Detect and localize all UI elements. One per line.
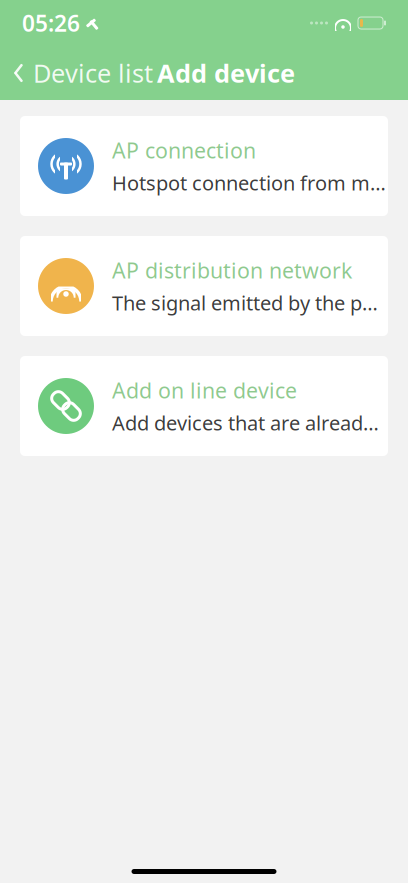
staticText: Add devices that are already networked <box>112 409 388 436</box>
staticText: Hotspot connection from mobile phon... <box>112 169 388 196</box>
button[interactable]: AP connection <box>20 116 388 216</box>
staticText: AP connection <box>112 136 256 164</box>
staticText: 05:26 <box>22 8 80 38</box>
staticText: Add on line device <box>112 376 297 404</box>
staticText: The signal emitted by the phone and devi… <box>112 289 388 316</box>
staticText: Add device <box>157 56 295 90</box>
staticText: AP distribution network <box>112 256 352 284</box>
button[interactable]: Device list <box>0 48 153 98</box>
staticText: Device list <box>33 56 153 90</box>
button[interactable]: Add on line device <box>20 356 388 456</box>
button[interactable]: AP distribution network <box>20 236 388 336</box>
